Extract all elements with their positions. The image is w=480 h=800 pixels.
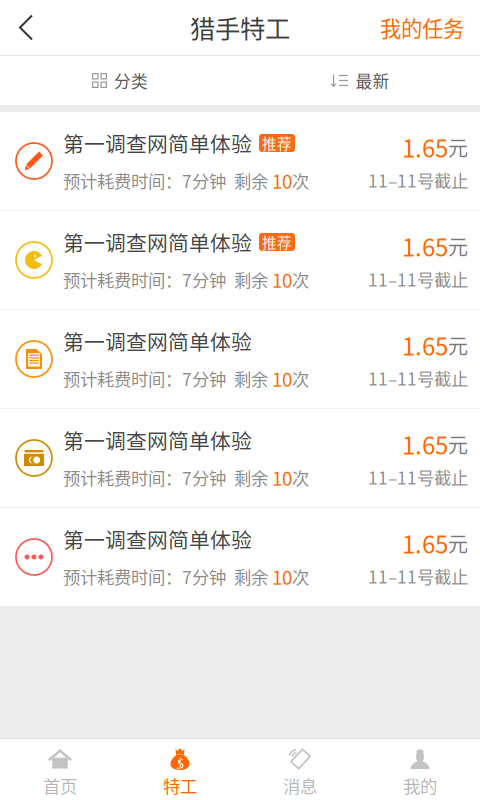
staticText: 元 bbox=[448, 528, 468, 557]
staticText: 11–11号截止 bbox=[368, 464, 468, 489]
staticText: 预计耗费时间： bbox=[63, 465, 182, 490]
staticText: 10 bbox=[272, 563, 292, 590]
staticText: 元 bbox=[448, 429, 468, 458]
button[interactable]: 我的任务 bbox=[380, 0, 480, 55]
staticText: 预计耗费时间： bbox=[63, 564, 182, 589]
staticText: 10 bbox=[272, 464, 292, 491]
staticText: 预计耗费时间： bbox=[63, 366, 182, 391]
staticText: 剩余 bbox=[226, 168, 272, 193]
button[interactable]: 返回 bbox=[0, 0, 52, 55]
staticText: 10 bbox=[272, 266, 292, 293]
staticText: 7分钟 bbox=[182, 465, 226, 490]
staticText: 10 bbox=[272, 167, 292, 194]
button[interactable]: 最新 bbox=[240, 56, 480, 105]
button[interactable]: 分类 bbox=[0, 56, 240, 105]
staticText: 次 bbox=[292, 267, 309, 292]
staticText: 元 bbox=[448, 330, 468, 359]
staticText: 第一调查网简单体验 bbox=[63, 227, 252, 257]
staticText: 特工 bbox=[163, 773, 197, 798]
staticText: 预计耗费时间： bbox=[63, 168, 182, 193]
staticText: 剩余 bbox=[226, 267, 272, 292]
staticText: 我的 bbox=[403, 773, 437, 798]
button[interactable]: 我的 bbox=[360, 739, 480, 800]
staticText: 猎手特工 bbox=[190, 9, 290, 46]
staticText: 11–11号截止 bbox=[368, 266, 468, 291]
staticText: 剩余 bbox=[226, 465, 272, 490]
button[interactable]: 第一调查网简单体验 bbox=[0, 211, 480, 309]
staticText: 1.65 bbox=[402, 130, 448, 164]
staticText: 第一调查网简单体验 bbox=[63, 524, 252, 554]
staticText: 推荐 bbox=[262, 231, 292, 253]
staticText: 7分钟 bbox=[182, 366, 226, 391]
button[interactable]: 消息 bbox=[240, 739, 360, 800]
staticText: 首页 bbox=[43, 773, 77, 798]
staticText: 次 bbox=[292, 168, 309, 193]
staticText: 11–11号截止 bbox=[368, 563, 468, 588]
staticText: 我的任务 bbox=[380, 12, 464, 43]
staticText: 7分钟 bbox=[182, 168, 226, 193]
staticText: 1.65 bbox=[402, 328, 448, 362]
staticText: 11–11号截止 bbox=[368, 167, 468, 192]
staticText: 7分钟 bbox=[182, 267, 226, 292]
button[interactable]: 第一调查网简单体验 bbox=[0, 409, 480, 507]
button[interactable]: 第一调查网简单体验 bbox=[0, 310, 480, 408]
staticText: 剩余 bbox=[226, 564, 272, 589]
staticText: 元 bbox=[448, 231, 468, 260]
staticText: 10 bbox=[272, 365, 292, 392]
staticText: 次 bbox=[292, 564, 309, 589]
button[interactable]: 特工 bbox=[120, 739, 240, 800]
button[interactable]: 第一调查网简单体验 bbox=[0, 508, 480, 606]
staticText: 推荐 bbox=[262, 132, 292, 154]
staticText: 第一调查网简单体验 bbox=[63, 425, 252, 455]
staticText: 分类 bbox=[114, 68, 148, 92]
staticText: 第一调查网简单体验 bbox=[63, 128, 252, 158]
staticText: 1.65 bbox=[402, 229, 448, 263]
staticText: 消息 bbox=[283, 773, 317, 798]
staticText: 剩余 bbox=[226, 366, 272, 391]
staticText: 1.65 bbox=[402, 427, 448, 461]
staticText: 次 bbox=[292, 366, 309, 391]
staticText: 第一调查网简单体验 bbox=[63, 326, 252, 356]
button[interactable]: 首页 bbox=[0, 739, 120, 800]
staticText: 最新 bbox=[355, 68, 389, 92]
staticText: 元 bbox=[448, 132, 468, 161]
staticText: 预计耗费时间： bbox=[63, 267, 182, 292]
staticText: 7分钟 bbox=[182, 564, 226, 589]
staticText: 1.65 bbox=[402, 526, 448, 560]
staticText: 11–11号截止 bbox=[368, 365, 468, 390]
button[interactable]: 第一调查网简单体验 bbox=[0, 112, 480, 210]
staticText: 次 bbox=[292, 465, 309, 490]
